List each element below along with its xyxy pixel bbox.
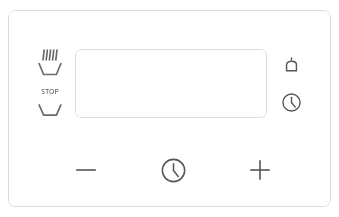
button[interactable]: Steam cooking xyxy=(34,47,66,79)
staticText: STOP xyxy=(41,87,59,97)
button[interactable]: Clock xyxy=(160,157,187,184)
button[interactable]: Alarm xyxy=(282,56,301,75)
button[interactable]: Timer xyxy=(281,92,302,113)
button[interactable]: Stop xyxy=(34,87,66,119)
button[interactable]: Decrease xyxy=(71,156,101,184)
button[interactable]: Increase xyxy=(245,156,275,184)
